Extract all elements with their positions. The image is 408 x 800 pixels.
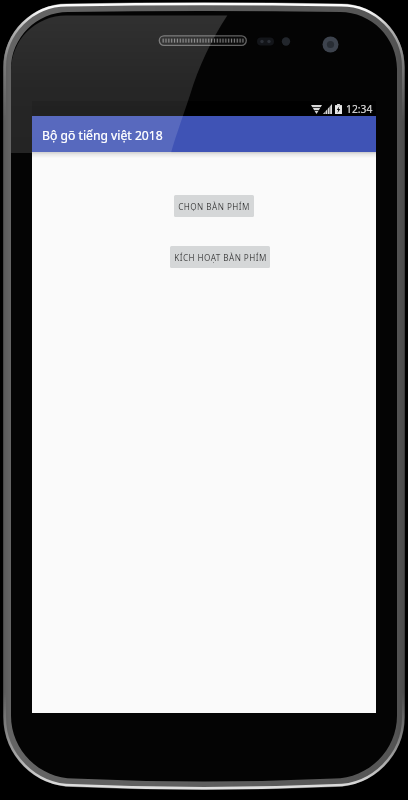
staticText: Bộ gõ tiếng việt 2018 <box>42 127 163 144</box>
staticText: 12:34 <box>346 102 373 116</box>
staticText: CHỌN BÀN PHÍM <box>178 201 250 212</box>
button[interactable]: CHỌN BÀN PHÍM <box>174 195 254 217</box>
button[interactable]: KÍCH HOẠT BÀN PHÍM <box>170 246 270 268</box>
staticText: KÍCH HOẠT BÀN PHÍM <box>174 252 267 263</box>
